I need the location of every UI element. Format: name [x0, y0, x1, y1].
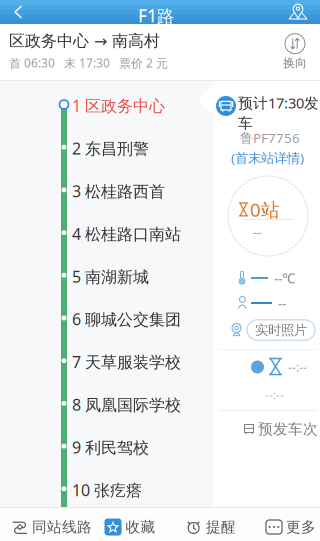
button[interactable]: 6 聊城公交集团	[0, 297, 213, 339]
button[interactable]: 地图	[278, 0, 320, 24]
staticText: 3 松桂路西首	[72, 180, 165, 202]
staticText: F1路	[138, 4, 174, 27]
button[interactable]: 换向	[274, 28, 316, 76]
button[interactable]: 提醒	[179, 507, 243, 541]
staticText: 车	[238, 114, 253, 132]
button[interactable]: (首末站详情)	[231, 149, 304, 167]
staticText: (首末站详情)	[231, 149, 304, 167]
staticText: 10 张疙瘩	[72, 479, 142, 500]
button[interactable]: 3 松桂路西首	[0, 169, 213, 211]
button[interactable]: 10 张疙瘩	[0, 468, 213, 510]
staticText: 6 聊城公交集团	[72, 308, 181, 330]
staticText: 4 松桂路口南站	[72, 223, 181, 244]
staticText: --℃	[274, 269, 295, 287]
staticText: 提醒	[206, 518, 236, 536]
staticText: 首 06:30	[9, 55, 55, 71]
button[interactable]: 8 凤凰国际学校	[0, 383, 213, 425]
staticText: --	[253, 223, 261, 241]
staticText: 更多	[286, 518, 316, 536]
button[interactable]: 7 天草服装学校	[0, 340, 213, 382]
staticText: 票价 2 元	[119, 55, 168, 71]
staticText: 区政务中心 → 南高村	[9, 31, 160, 51]
button[interactable]: 同站线路	[14, 507, 90, 541]
button[interactable]: 1 区政务中心	[0, 84, 213, 126]
staticText: 0站	[250, 197, 280, 222]
button[interactable]: 更多	[259, 507, 320, 541]
staticText: 7 天草服装学校	[72, 351, 181, 372]
staticText: 鲁PF7756	[240, 129, 300, 147]
staticText: --	[278, 294, 286, 312]
button[interactable]: 4 松桂路口南站	[0, 212, 213, 254]
staticText: 实时照片	[255, 322, 307, 338]
staticText: 预发车次	[258, 420, 318, 438]
staticText: 1 区政务中心	[72, 95, 165, 116]
button[interactable]: 收藏	[98, 507, 162, 541]
staticText: --:--	[265, 387, 284, 403]
button[interactable]: 5 南湖新城	[0, 255, 213, 297]
button[interactable]: 预发车次	[243, 419, 317, 439]
staticText: 8 凤凰国际学校	[72, 394, 181, 415]
button[interactable]: 9 利民驾校	[0, 426, 213, 468]
staticText: 末 17:30	[64, 55, 110, 71]
staticText: 收藏	[125, 518, 155, 536]
staticText: 9 利民驾校	[72, 437, 149, 458]
staticText: 2 东昌刑警	[72, 138, 149, 159]
staticText: 换向	[283, 56, 307, 70]
staticText: 同站线路	[32, 518, 92, 536]
button[interactable]: 2 东昌刑警	[0, 127, 213, 169]
staticText: 5 南湖新城	[72, 266, 149, 287]
button[interactable]: 实时照片	[235, 320, 320, 340]
button[interactable]: 返回	[0, 0, 44, 24]
staticText: --:--	[288, 359, 307, 375]
staticText: 预计17:30发	[238, 93, 319, 112]
